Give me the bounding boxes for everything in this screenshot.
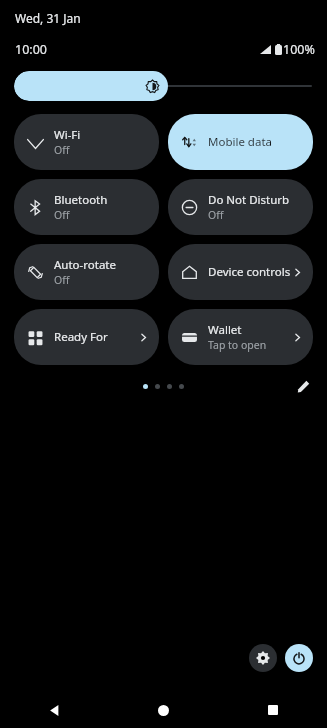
staticText: Device controls bbox=[208, 264, 291, 280]
staticText: Wi-Fi bbox=[54, 127, 81, 143]
button[interactable]: Settings bbox=[249, 644, 277, 672]
staticText: Mobile data bbox=[208, 134, 272, 150]
button[interactable]: Recents bbox=[218, 692, 327, 728]
button[interactable]: Power bbox=[285, 644, 313, 672]
button[interactable]: Auto-rotate bbox=[14, 244, 159, 300]
button[interactable]: Do Not Disturb bbox=[168, 179, 313, 235]
staticText: Wed, 31 Jan bbox=[15, 10, 81, 26]
button[interactable]: Ready For bbox=[14, 309, 159, 365]
staticText: Off bbox=[208, 208, 224, 222]
staticText: Tap to open bbox=[208, 338, 267, 352]
button[interactable]: Brightness bbox=[14, 71, 314, 101]
button[interactable]: Device controls bbox=[168, 244, 313, 300]
staticText: Ready For bbox=[54, 329, 108, 345]
button[interactable]: Edit tiles bbox=[293, 376, 313, 396]
staticText: 10:00 bbox=[15, 41, 47, 58]
staticText: Off bbox=[54, 143, 70, 157]
staticText: Auto-rotate bbox=[54, 257, 116, 273]
staticText: Bluetooth bbox=[54, 192, 108, 208]
staticText: Off bbox=[54, 208, 70, 222]
button[interactable]: Wallet bbox=[168, 309, 313, 365]
staticText: Do Not Disturb bbox=[208, 192, 290, 208]
button[interactable]: Back bbox=[0, 692, 109, 728]
button[interactable]: Home bbox=[109, 692, 218, 728]
staticText: Off bbox=[54, 273, 70, 287]
button[interactable]: Wi-Fi bbox=[14, 114, 159, 170]
staticText: Wallet bbox=[208, 322, 242, 338]
staticText: 100% bbox=[283, 41, 315, 58]
button[interactable]: Mobile data bbox=[168, 114, 313, 170]
button[interactable]: Bluetooth bbox=[14, 179, 159, 235]
